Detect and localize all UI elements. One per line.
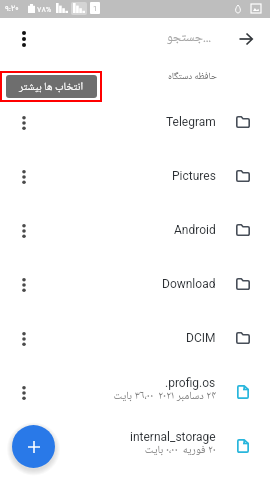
staticText: ۹:۲۰: [5, 3, 19, 16]
button[interactable]: Item options: [6, 428, 42, 464]
staticText: حافظه دستگاه: [0, 70, 217, 83]
staticText: ۷۸%: [37, 4, 52, 16]
staticText: DCIM: [186, 331, 216, 345]
staticText: Telegram: [166, 115, 216, 129]
button[interactable]: More options: [6, 21, 42, 57]
button[interactable]: Item options: [6, 266, 42, 302]
button[interactable]: Item options: [0, 203, 270, 257]
button[interactable]: Item options: [0, 95, 270, 149]
button[interactable]: Item options: [6, 212, 42, 248]
button[interactable]: Add: [12, 425, 55, 468]
staticText: انتخاب ها بیشتر: [19, 79, 84, 94]
staticText: جستجو...: [0, 29, 211, 47]
button[interactable]: Item options: [0, 311, 270, 365]
button[interactable]: Item options: [6, 374, 42, 410]
staticText: Pictures: [172, 169, 216, 183]
staticText: Android: [174, 223, 216, 237]
button[interactable]: Search: [228, 21, 264, 57]
button[interactable]: Item options: [6, 104, 42, 140]
staticText: Download: [162, 277, 216, 291]
staticText: .profig.os: [165, 376, 216, 390]
staticText: ۲۰ فوریه ۰٬۰۰ بایت: [144, 442, 216, 457]
button[interactable]: Item options: [0, 149, 270, 203]
button[interactable]: Item options: [0, 365, 270, 419]
staticText: 1: [93, 4, 98, 13]
button[interactable]: Item options: [6, 158, 42, 194]
staticText: internal_storage: [130, 430, 216, 444]
button[interactable]: Item options: [0, 257, 270, 311]
staticText: ۲۴ دسامبر ۲۰۲۱ ۳۶٬۰۰ بایت: [113, 388, 216, 403]
button[interactable]: Item options: [0, 419, 270, 473]
button[interactable]: انتخاب ها بیشتر: [6, 75, 97, 98]
button[interactable]: Item options: [6, 320, 42, 356]
